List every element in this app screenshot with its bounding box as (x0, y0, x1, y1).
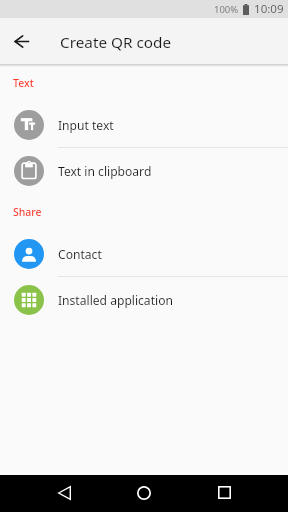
staticText: Share (13, 205, 42, 219)
staticText: Text in clipboard (58, 163, 152, 179)
staticText: 10:09 (254, 1, 284, 17)
staticText: Contact (58, 246, 102, 262)
staticText: Installed application (58, 292, 173, 308)
staticText: Input text (58, 117, 114, 133)
staticText: 100% (214, 3, 239, 16)
staticText: Create QR code (60, 32, 172, 53)
button[interactable]: Navigate back (44, 475, 84, 512)
button[interactable]: Installed application (0, 277, 288, 322)
button[interactable]: Back (10, 27, 38, 55)
button[interactable]: Text in clipboard (0, 148, 288, 193)
staticText: Text (13, 76, 34, 90)
button[interactable]: Contact (0, 231, 288, 276)
button[interactable]: Home (124, 475, 164, 512)
button[interactable]: Recent apps (204, 475, 244, 512)
button[interactable]: Input text (0, 102, 288, 147)
